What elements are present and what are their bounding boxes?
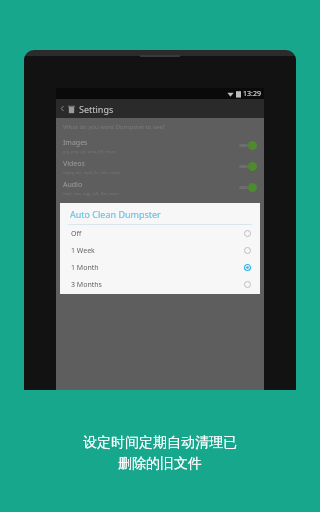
staticText: 删除的旧文件	[118, 455, 202, 473]
button[interactable]: 3 Months	[60, 276, 260, 293]
staticText: Settings	[79, 103, 114, 115]
button[interactable]: Audio	[56, 177, 264, 198]
staticText: 3 Months	[71, 280, 244, 290]
other: Back	[60, 106, 65, 111]
button[interactable]: Back	[56, 99, 264, 118]
staticText: Audio	[63, 180, 83, 190]
staticText: mpeg, avi, mp4, flv, mkv, more	[63, 170, 121, 175]
staticText: Images	[63, 138, 88, 148]
staticText: pdf, doc, ppt, xls, txt, more	[63, 212, 113, 217]
button[interactable]: 1 Week	[60, 242, 260, 259]
staticText: 1 Week	[71, 246, 244, 256]
staticText: jpg, png, gif, bmp, tiff, more	[63, 149, 116, 154]
staticText: What do you want Dumpster to see?	[63, 123, 166, 131]
button[interactable]: Images	[56, 135, 264, 156]
staticText: 设定时间定期自动清理已	[83, 434, 237, 452]
staticText: 13:29	[243, 89, 261, 99]
staticText: Videos	[63, 159, 85, 169]
button[interactable]: Videos	[56, 156, 264, 177]
staticText: Documents	[63, 201, 101, 211]
button[interactable]: 1 Month	[60, 259, 260, 276]
button[interactable]: Off	[60, 225, 260, 242]
staticText: mp3, wav, ogg, aiff, flac, more	[63, 191, 120, 196]
staticText: 1 Month	[71, 263, 244, 273]
staticText: Off	[71, 229, 244, 239]
button[interactable]: Documents	[56, 198, 264, 219]
staticText: Auto Clean Dumpster	[70, 208, 161, 220]
